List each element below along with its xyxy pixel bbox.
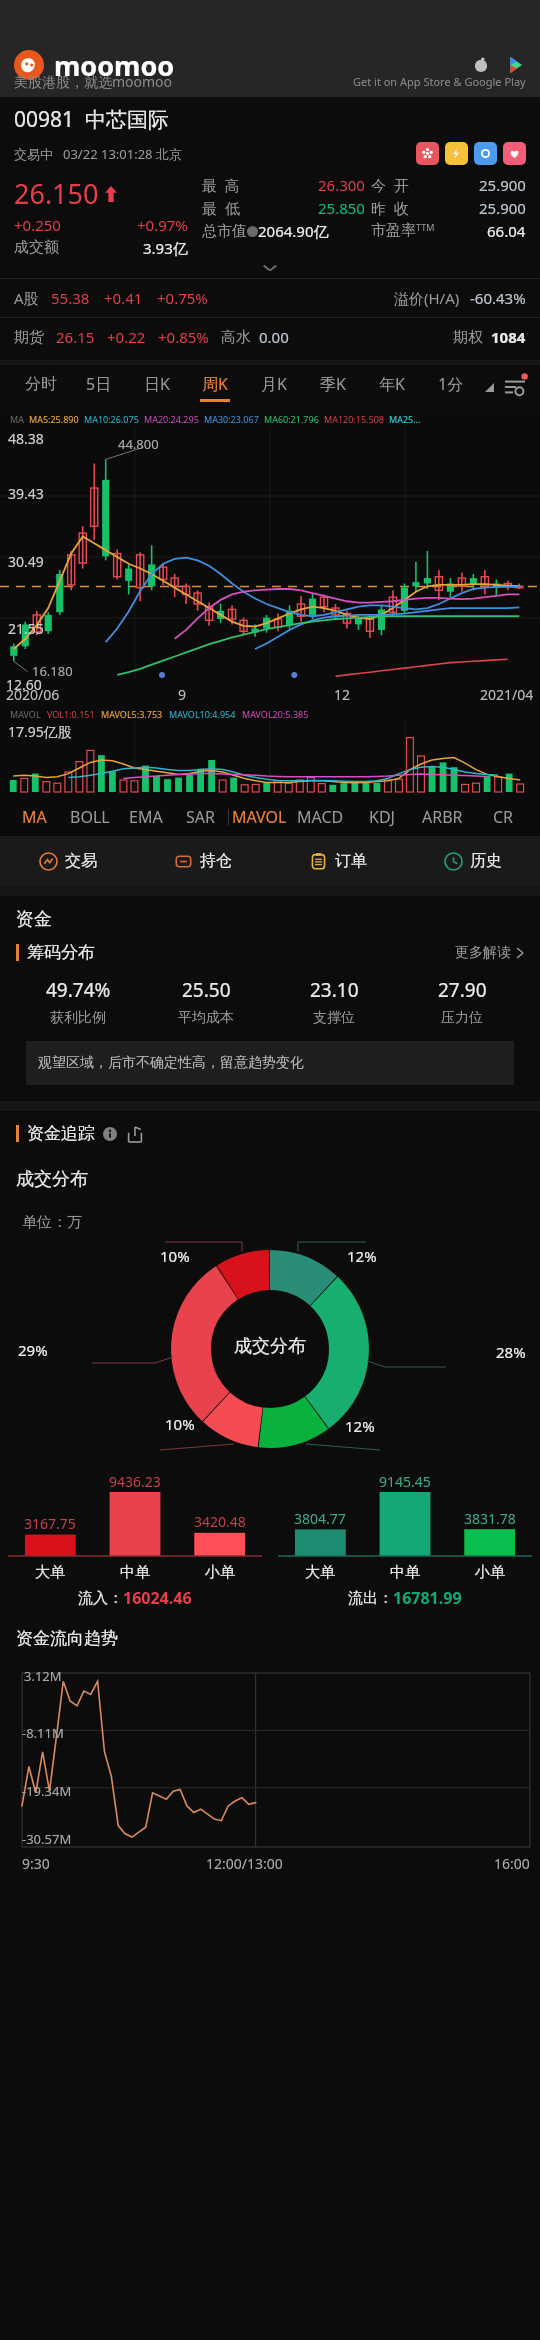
button[interactable] (0, 258, 540, 278)
staticText: 中单 (390, 1563, 420, 1582)
staticText: ARBR (422, 806, 463, 828)
staticText: 单位：万 (22, 1213, 82, 1232)
button[interactable]: MACD (290, 798, 351, 836)
staticText: VOL1:0.151 (47, 708, 95, 720)
button[interactable]: 持仓 (135, 836, 270, 886)
staticText: 中单 (120, 1563, 150, 1582)
staticText: 筹码分布 (27, 942, 95, 963)
button[interactable]: 日K (128, 365, 186, 410)
button[interactable]: BOLL (62, 798, 118, 836)
staticText: 年K (379, 373, 405, 395)
button[interactable]: SAR (173, 798, 228, 836)
button[interactable]: 筹码分布 (16, 942, 524, 963)
staticText: 历史 (470, 851, 502, 871)
staticText: 2020/06 (6, 685, 60, 704)
staticText: 3167.75 (24, 1514, 76, 1533)
staticText: 48.38 (8, 429, 44, 448)
staticText: 溢价(H/A) (394, 288, 460, 308)
staticText: 期货 (14, 328, 44, 347)
button[interactable]: CR (473, 798, 534, 836)
staticText: 观望区域，后市不确定性高，留意趋势变化 (38, 1054, 304, 1072)
staticText: 3420.48 (194, 1512, 246, 1531)
staticText: 30.49 (8, 552, 44, 571)
button[interactable]: MA (6, 798, 62, 836)
staticText: MA30:23.067 (204, 413, 259, 425)
staticText: 月K (261, 373, 287, 395)
button[interactable]: 展开 (480, 365, 498, 410)
button[interactable]: 分时 (12, 365, 70, 410)
staticText: MA (22, 806, 47, 828)
staticText: A股 (14, 288, 39, 308)
staticText: 26.15 (56, 327, 95, 347)
staticText: 周K (202, 373, 228, 395)
staticText: 2021/04 (480, 685, 534, 704)
button[interactable]: 分享 (127, 1126, 143, 1142)
staticText: TTM (416, 221, 435, 233)
staticText: 25.900 (479, 175, 526, 195)
staticText: 3.12M (24, 1667, 62, 1685)
staticText: 平均成本 (178, 1009, 234, 1027)
staticText: 日K (144, 373, 170, 395)
staticText: 10% (160, 1246, 190, 1266)
staticText: 21.55 (8, 619, 44, 638)
button[interactable]: 1分 (421, 365, 480, 410)
button[interactable]: 年K (362, 365, 421, 410)
staticText: -8.11M (22, 1724, 64, 1742)
staticText: moomoo (54, 47, 175, 84)
staticText: 高水 (221, 328, 251, 347)
staticText: 订单 (335, 851, 367, 871)
button[interactable]: 周K (186, 365, 244, 410)
button[interactable]: tag (416, 142, 439, 165)
button[interactable]: 历史 (405, 836, 540, 886)
staticText: MA5:25.890 (29, 413, 79, 425)
button[interactable]: ARBR (412, 798, 473, 836)
staticText: SAR (186, 806, 215, 828)
button[interactable]: tag (445, 142, 468, 165)
staticText: -60.43% (470, 288, 526, 308)
button[interactable]: 5日 (70, 365, 128, 410)
staticText: 00981 中芯国际 (14, 105, 169, 134)
staticText: 分时 (25, 374, 57, 394)
staticText: 39.43 (8, 484, 44, 503)
button[interactable]: 季K (303, 365, 362, 410)
button[interactable]: MAVOL (229, 798, 290, 836)
staticText: 3831.78 (464, 1509, 516, 1528)
staticText: 26.300 (318, 175, 365, 195)
staticText: 资金 (16, 908, 52, 931)
staticText: +0.22 (107, 327, 146, 347)
staticText: 成交额 (14, 238, 59, 257)
staticText: 获利比例 (50, 1009, 106, 1027)
staticText: 3.93亿 (143, 238, 188, 258)
staticText: 总市值 (202, 222, 247, 241)
button[interactable]: KDJ (351, 798, 412, 836)
other: Google Play (506, 55, 526, 75)
button[interactable]: 交易 (0, 836, 135, 886)
staticText: BOLL (70, 806, 110, 828)
staticText: 昨 收 (371, 198, 409, 218)
staticText: 小单 (475, 1563, 505, 1582)
button[interactable]: 订单 (270, 836, 405, 886)
button[interactable]: tag (503, 142, 526, 165)
staticText: 12% (345, 1416, 375, 1436)
button[interactable]: EMA (118, 798, 173, 836)
staticText: EMA (129, 806, 163, 828)
staticText: MA (10, 413, 24, 425)
staticText: 9 (178, 685, 187, 704)
button[interactable]: 说明 (103, 1127, 117, 1141)
staticText: 资金追踪 (27, 1123, 95, 1144)
button[interactable]: tag (474, 142, 497, 165)
staticText: 9145.45 (379, 1472, 431, 1491)
staticText: 16781.99 (393, 1587, 462, 1609)
button[interactable]: 月K (244, 365, 303, 410)
staticText: 1084 (491, 327, 526, 347)
staticText: 流入： (78, 1589, 123, 1608)
staticText: 44.800 (118, 435, 159, 453)
staticText: 9:30 (22, 1854, 50, 1873)
staticText: 28% (496, 1342, 526, 1362)
staticText: KDJ (369, 806, 395, 828)
staticText: 16024.46 (123, 1587, 192, 1609)
staticText: 0.00 (259, 327, 289, 347)
button[interactable]: 设置 (498, 365, 532, 410)
staticText: 12.60 (6, 675, 42, 694)
staticText: -30.57M (22, 1830, 72, 1848)
